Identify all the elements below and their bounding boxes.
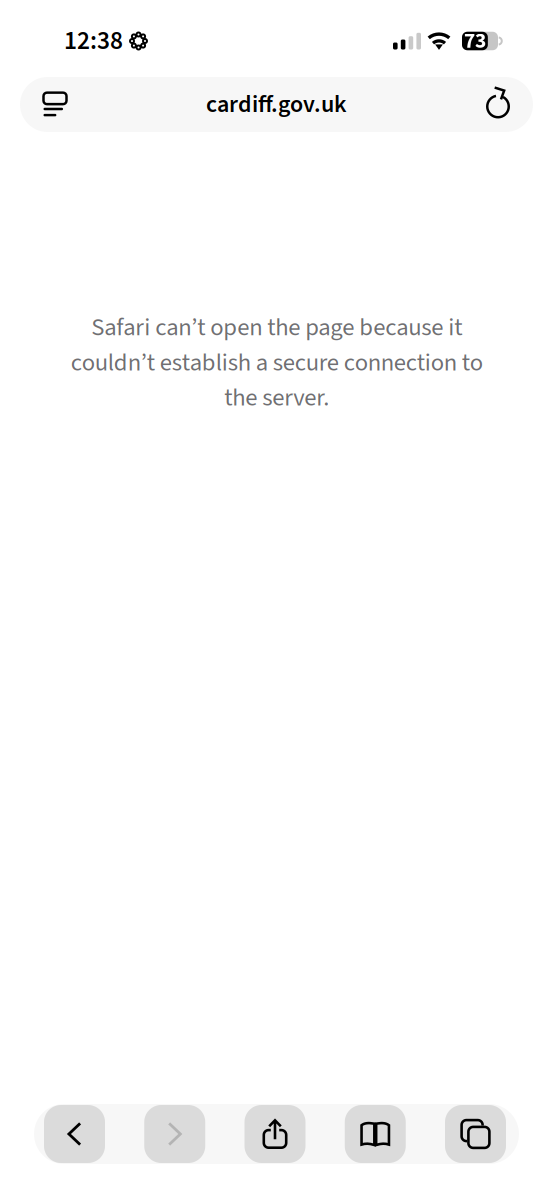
button[interactable]: Back	[44, 1105, 105, 1163]
button[interactable]: Page Settings	[29, 77, 81, 132]
button[interactable]: Share	[244, 1105, 305, 1163]
button[interactable]: Reload	[472, 77, 524, 132]
staticText: Safari can’t open the page because it co…	[70, 310, 482, 415]
button[interactable]: Bookmarks	[345, 1105, 406, 1163]
button[interactable]: cardiff.gov.uk	[206, 87, 347, 122]
staticText: 73	[464, 26, 486, 56]
button[interactable]: Forward	[144, 1105, 205, 1163]
button[interactable]: Tabs	[445, 1105, 506, 1163]
staticText: 12:38	[64, 23, 123, 59]
staticText: cardiff.gov.uk	[206, 87, 347, 122]
